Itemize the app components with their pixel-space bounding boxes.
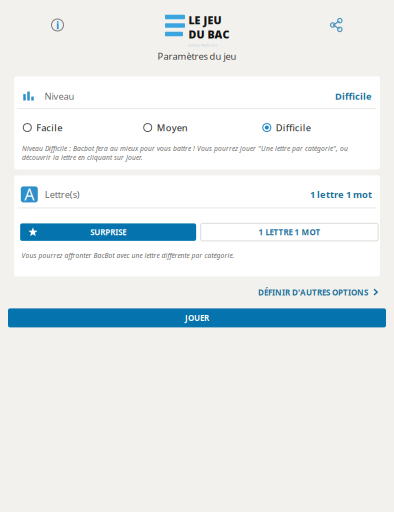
button[interactable]: SURPRISE	[20, 223, 196, 241]
staticText: Niveau Difficile : Bacbot fera au mieux …	[22, 144, 348, 162]
button[interactable]: Moyen	[143, 121, 262, 134]
button[interactable]: Partager	[329, 18, 343, 32]
staticText: Vous pourrez affronter BacBot avec une l…	[21, 251, 234, 260]
button[interactable]: Informations	[49, 17, 65, 33]
staticText: LE JEU	[188, 13, 221, 27]
staticText: Paramètres du jeu	[157, 50, 236, 62]
staticText: JOUER	[185, 313, 209, 323]
staticText: Moyen	[157, 121, 188, 134]
staticText: Difficile	[276, 121, 311, 134]
staticText: JOUEZ PARTOUT	[188, 42, 217, 48]
button[interactable]: Facile	[22, 121, 143, 134]
staticText: Lettre(s)	[45, 188, 80, 201]
staticText: SURPRISE	[90, 227, 126, 237]
staticText: Difficile	[335, 90, 372, 102]
button[interactable]: 1 LETTRE 1 MOT	[201, 223, 378, 241]
button[interactable]: JOUER	[8, 308, 386, 327]
staticText: Facile	[36, 121, 62, 134]
staticText: DU BAC	[188, 27, 229, 41]
staticText: i	[56, 18, 59, 32]
staticText: DÉFINIR D'AUTRES OPTIONS	[258, 287, 368, 298]
button[interactable]: Difficile	[262, 121, 362, 134]
staticText: Niveau	[44, 90, 74, 102]
staticText: 1 lettre 1 mot	[310, 188, 372, 201]
staticText: 1 LETTRE 1 MOT	[258, 227, 320, 237]
staticText: A	[24, 184, 34, 205]
button[interactable]: DÉFINIR D'AUTRES OPTIONS	[258, 283, 379, 301]
